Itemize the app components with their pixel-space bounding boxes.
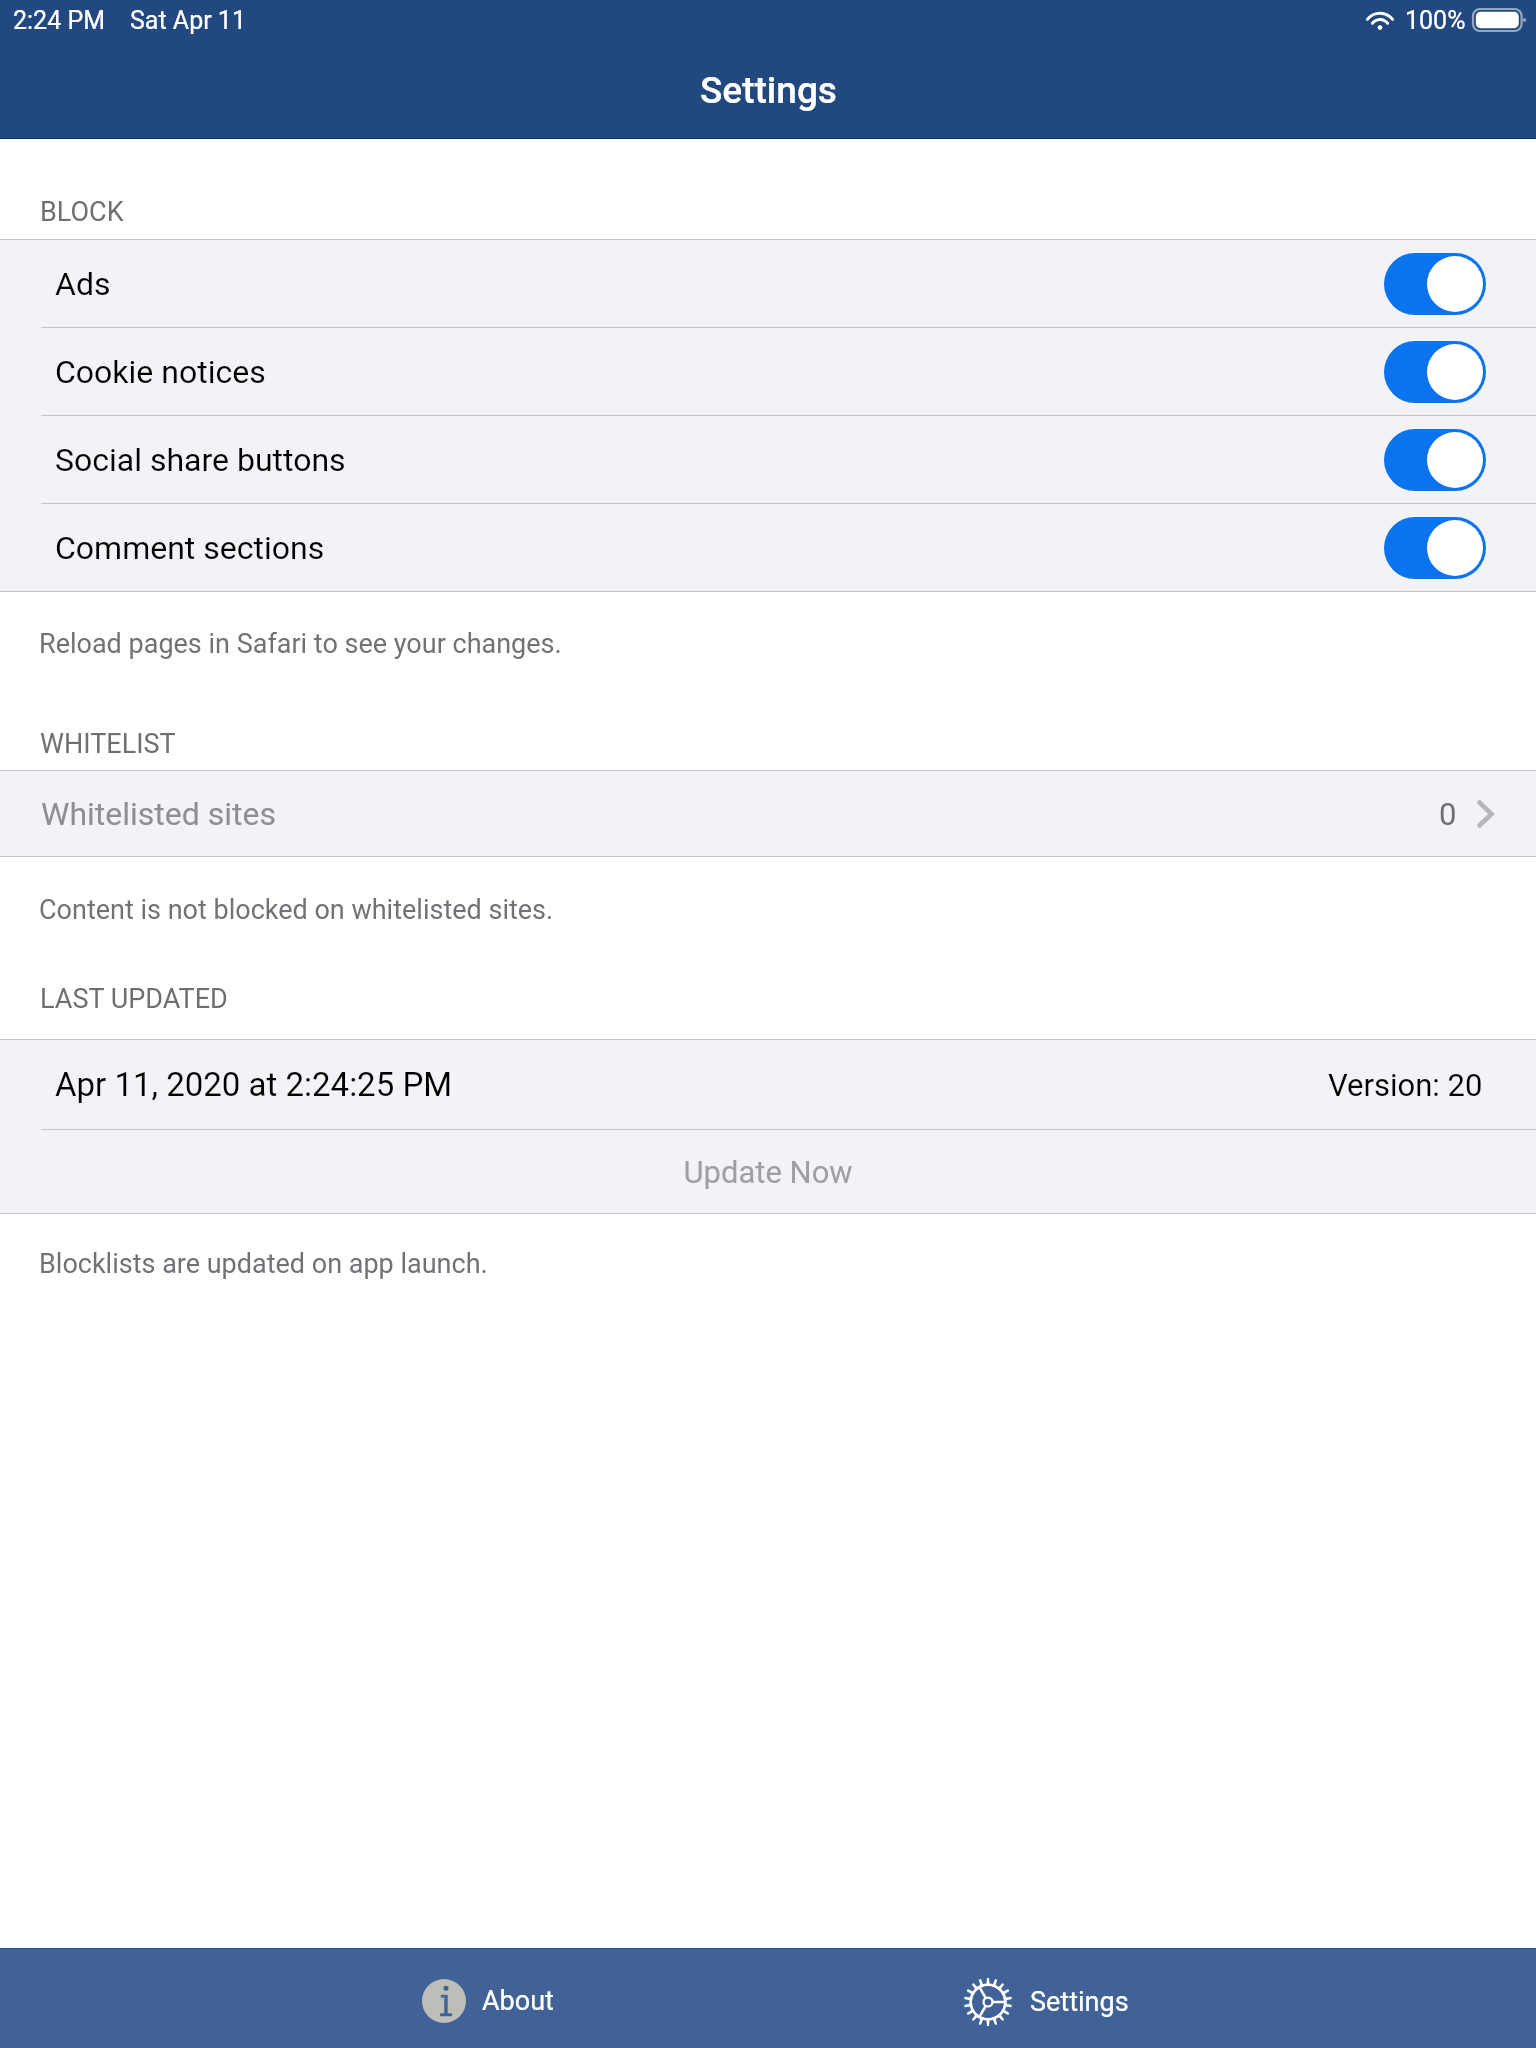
button[interactable]: Whitelisted sites bbox=[0, 771, 1536, 856]
staticText: Apr 11, 2020 at 2:24:25 PM bbox=[55, 1065, 453, 1104]
other: About bbox=[422, 1979, 466, 2023]
button[interactable]: Apr 11, 2020 at 2:24:25 PM bbox=[0, 1040, 1536, 1129]
staticText: Settings bbox=[1030, 1986, 1129, 2018]
staticText: BLOCK bbox=[40, 196, 1536, 228]
staticText: Sat Apr 11 bbox=[130, 6, 246, 35]
staticText: Ads bbox=[55, 265, 111, 303]
staticText: WHITELIST bbox=[40, 728, 1536, 760]
button[interactable]: Social share buttons bbox=[0, 416, 1536, 503]
staticText: Comment sections bbox=[55, 529, 325, 567]
button[interactable]: Ads bbox=[0, 240, 1536, 327]
button[interactable]: About bbox=[333, 1951, 643, 2048]
button[interactable]: Comment sections bbox=[0, 504, 1536, 591]
staticText: Settings bbox=[700, 69, 837, 112]
staticText: 2:24 PM bbox=[13, 6, 106, 35]
staticText: Whitelisted sites bbox=[41, 795, 276, 833]
button[interactable]: Cookie notices bbox=[0, 328, 1536, 415]
button[interactable]: Ads, on bbox=[1384, 253, 1486, 315]
staticText: About bbox=[482, 1985, 554, 2017]
other: Settings bbox=[964, 1978, 1012, 2026]
staticText: Cookie notices bbox=[55, 353, 266, 391]
staticText: Reload pages in Safari to see your chang… bbox=[39, 628, 1536, 660]
button[interactable]: Update Now bbox=[0, 1130, 1536, 1213]
staticText: Social share buttons bbox=[55, 441, 346, 479]
staticText: Version: 20 bbox=[1328, 1067, 1483, 1103]
staticText: Blocklists are updated on app launch. bbox=[39, 1248, 1536, 1280]
staticText: LAST UPDATED bbox=[40, 983, 1536, 1015]
staticText: Content is not blocked on whitelisted si… bbox=[39, 894, 1536, 926]
button[interactable]: Comment sections, on bbox=[1384, 517, 1486, 579]
staticText: Update Now bbox=[683, 1154, 853, 1190]
button[interactable]: Social share buttons, on bbox=[1384, 429, 1486, 491]
staticText: 0 bbox=[1439, 796, 1457, 832]
button[interactable]: Settings bbox=[891, 1952, 1201, 2048]
staticText: 100% bbox=[1405, 6, 1466, 35]
button[interactable]: Cookie notices, on bbox=[1384, 341, 1486, 403]
